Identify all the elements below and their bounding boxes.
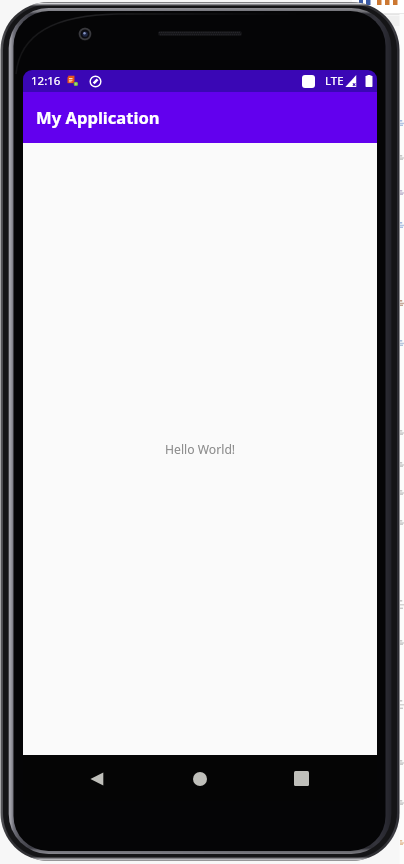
button[interactable]: Home — [175, 756, 225, 801]
staticText: LTE — [325, 73, 344, 89]
button[interactable]: Recents — [276, 756, 326, 801]
button[interactable]: Back — [72, 756, 122, 801]
staticText: Hello World! — [165, 441, 236, 458]
staticText: My Application — [36, 106, 160, 129]
staticText: 12:16 — [31, 73, 61, 89]
button[interactable]: My Application — [23, 92, 377, 143]
